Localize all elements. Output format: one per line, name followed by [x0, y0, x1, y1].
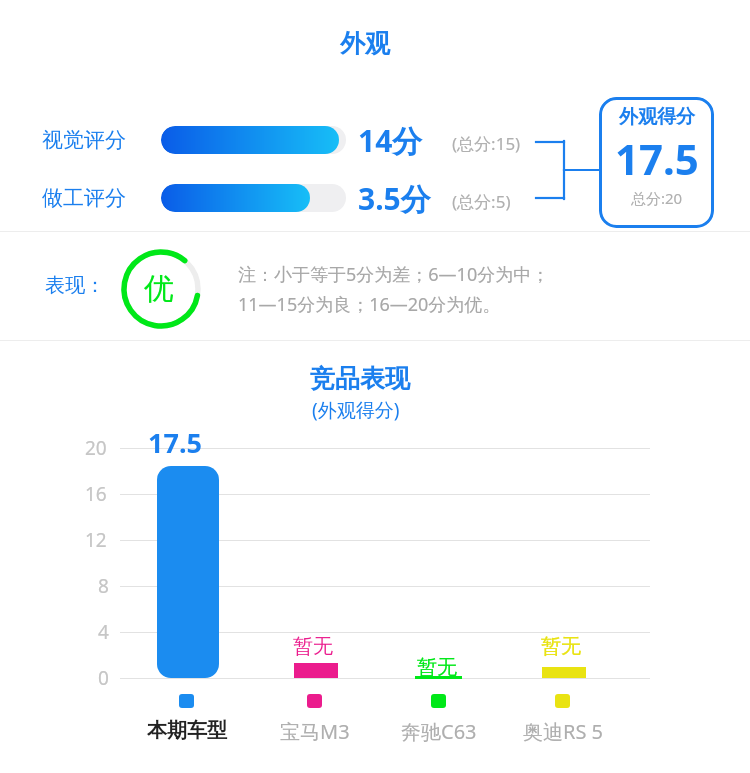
- staticText: 20: [85, 435, 107, 461]
- staticText: 8: [98, 573, 109, 599]
- staticText: (总分:5): [452, 190, 511, 213]
- staticText: 暂无: [541, 634, 581, 659]
- button[interactable]: 外观得分: [599, 97, 714, 228]
- staticText: 奔驰C63: [401, 718, 477, 745]
- staticText: 总分:20: [631, 188, 683, 208]
- button[interactable]: 奥迪RS 5: [503, 718, 623, 745]
- button[interactable]: 奔驰C63: [379, 718, 499, 745]
- staticText: 16: [85, 481, 107, 507]
- staticText: 0: [98, 665, 109, 691]
- button[interactable]: [157, 466, 219, 678]
- staticText: (外观得分): [312, 397, 400, 423]
- staticText: 外观: [340, 28, 390, 59]
- staticText: 17.5: [148, 424, 202, 461]
- staticText: 优: [144, 270, 174, 308]
- staticText: (总分:15): [452, 132, 521, 155]
- staticText: 做工评分: [42, 185, 126, 211]
- staticText: 暂无: [293, 634, 333, 659]
- staticText: 竞品表现: [310, 363, 410, 394]
- staticText: 宝马M3: [280, 718, 350, 745]
- staticText: 本期车型: [147, 718, 227, 743]
- staticText: 视觉评分: [42, 127, 126, 153]
- staticText: 外观得分: [619, 105, 695, 129]
- button[interactable]: 宝马M3: [255, 718, 375, 745]
- staticText: 12: [85, 527, 107, 553]
- button[interactable]: 本期车型: [127, 718, 247, 743]
- staticText: 11—15分为良；16—20分为优。: [238, 292, 501, 317]
- staticText: 表现：: [45, 273, 105, 298]
- staticText: 暂无: [417, 655, 457, 680]
- staticText: 17.5: [615, 130, 699, 187]
- staticText: 注：小于等于5分为差；6—10分为中；: [238, 262, 550, 287]
- staticText: 14分: [358, 120, 423, 161]
- staticText: 奥迪RS 5: [523, 718, 604, 745]
- staticText: 3.5分: [358, 178, 431, 219]
- staticText: 4: [98, 619, 109, 645]
